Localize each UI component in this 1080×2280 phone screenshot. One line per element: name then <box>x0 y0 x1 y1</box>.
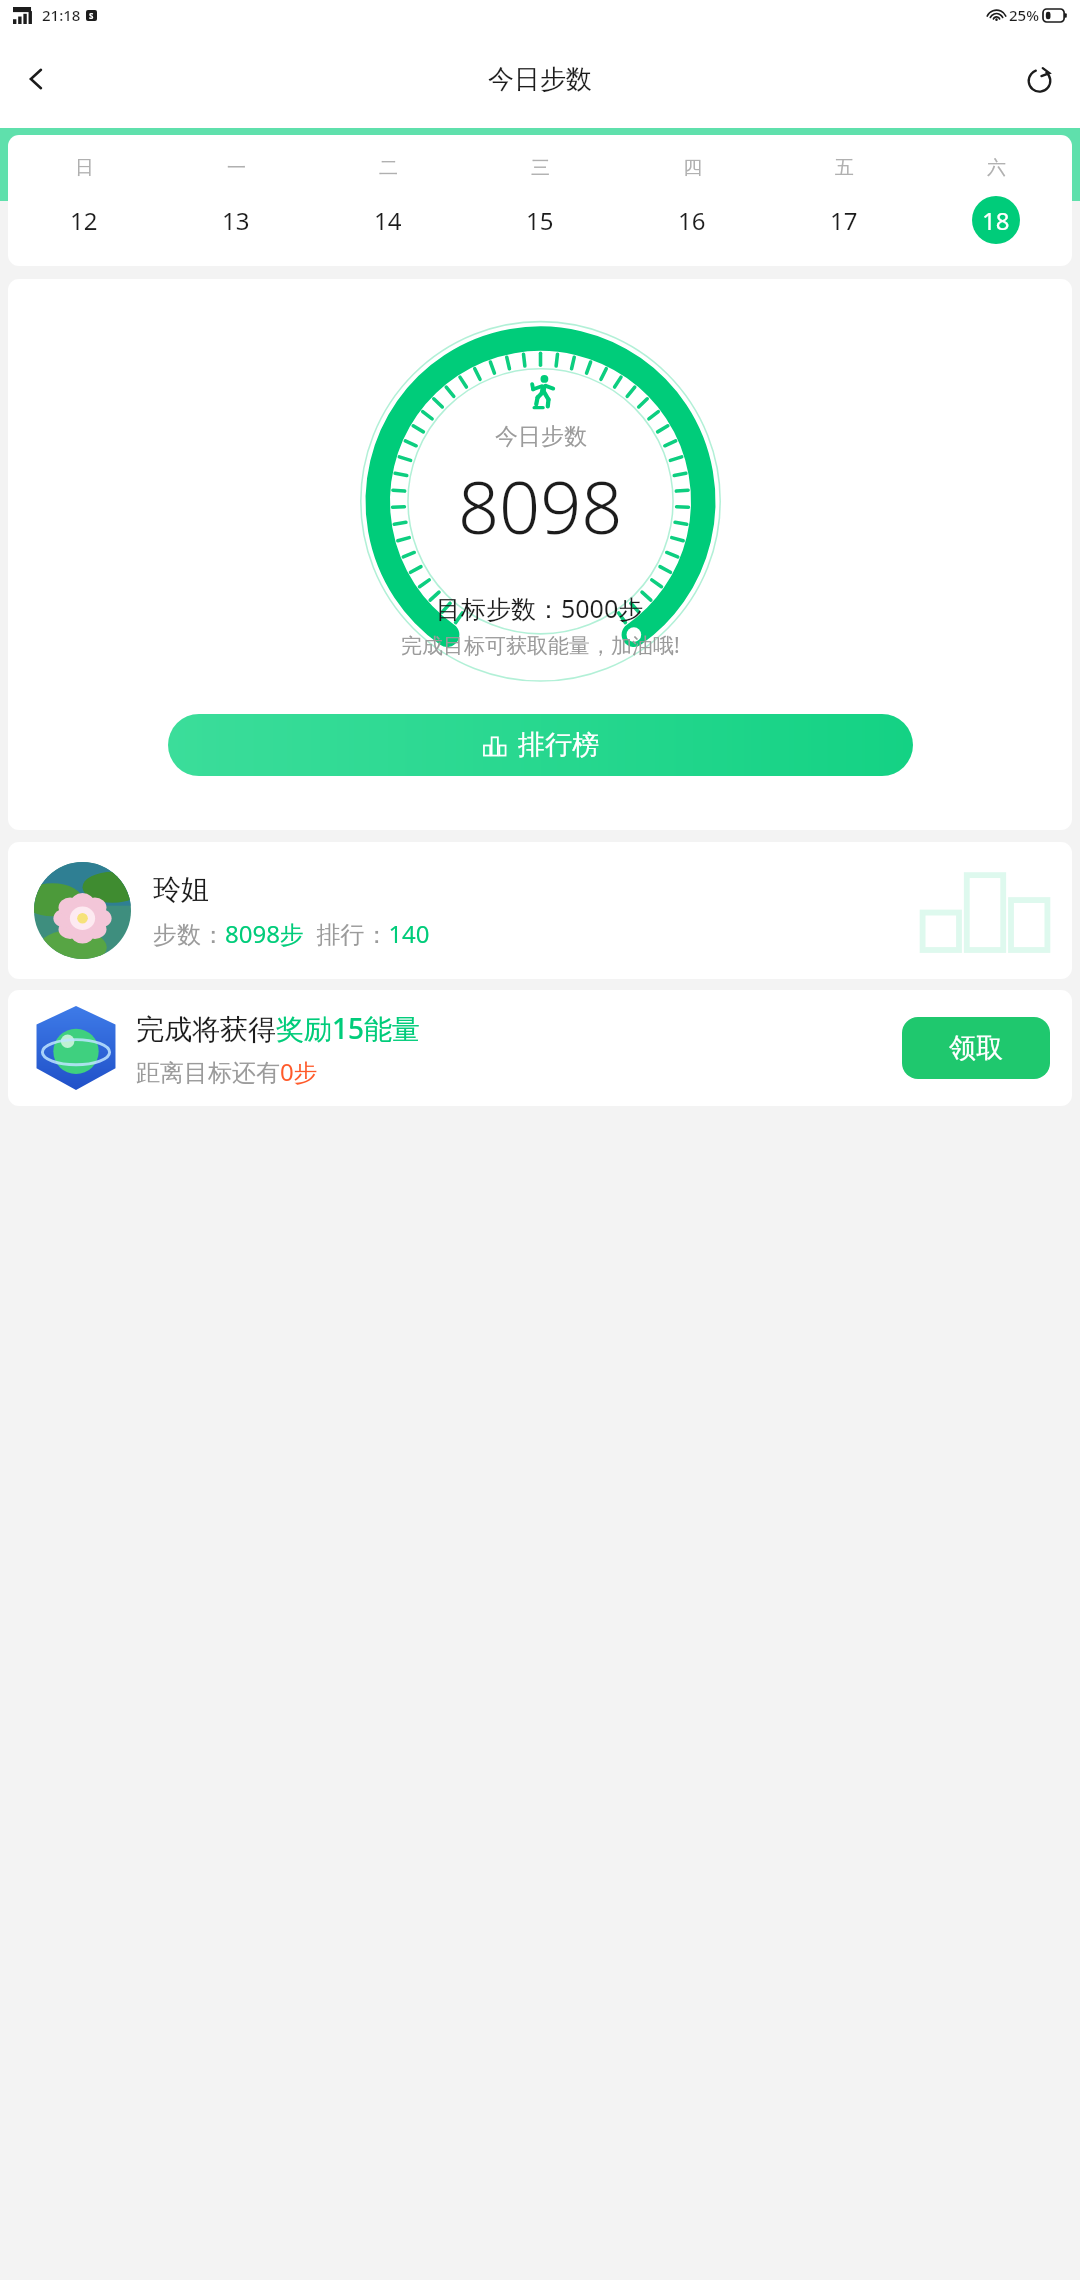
staticText: 17 <box>830 204 858 237</box>
staticText: 完成目标可获取能量，加油哦! <box>401 631 680 660</box>
staticText: 目标步数：5000步 <box>436 591 644 625</box>
staticText: S <box>89 10 94 21</box>
staticText: 一 <box>227 156 246 180</box>
staticText: 六 <box>987 156 1006 180</box>
staticText: 今日步数 <box>495 422 587 451</box>
button[interactable]: 15 <box>516 196 564 244</box>
button[interactable]: Share <box>1012 52 1066 106</box>
staticText: 13 <box>222 204 250 237</box>
staticText: 二 <box>379 156 398 180</box>
staticText: 四 <box>683 156 702 180</box>
button[interactable]: 领取 <box>902 1017 1050 1079</box>
button[interactable]: 17 <box>820 196 868 244</box>
button[interactable]: 玲姐 <box>8 842 1072 979</box>
staticText: 步数：8098步 排行：140 <box>153 917 430 950</box>
staticText: 25% <box>1009 5 1039 25</box>
staticText: 15 <box>526 204 554 237</box>
staticText: 完成将获得奖励15能量 <box>136 1009 421 1047</box>
staticText: 18 <box>982 204 1010 237</box>
staticText: 玲姐 <box>153 872 209 907</box>
button[interactable]: 日 <box>8 135 1072 266</box>
staticText: 8098 <box>458 457 623 555</box>
staticText: 14 <box>374 204 402 237</box>
staticText: 日 <box>75 156 94 180</box>
button[interactable]: 16 <box>668 196 716 244</box>
staticText: 16 <box>678 204 706 237</box>
button[interactable]: Back <box>10 52 64 106</box>
button[interactable]: 排行榜 <box>168 714 913 776</box>
button[interactable]: 18 <box>972 196 1020 244</box>
staticText: 五 <box>835 156 854 180</box>
staticText: 距离目标还有0步 <box>136 1055 318 1088</box>
staticText: 今日步数 <box>488 63 592 96</box>
staticText: 12 <box>70 204 98 237</box>
button[interactable]: 14 <box>364 196 412 244</box>
button[interactable]: 12 <box>60 196 108 244</box>
staticText: 21:18 <box>42 5 81 25</box>
staticText: 三 <box>531 156 550 180</box>
staticText: 领取 <box>949 1031 1003 1065</box>
button[interactable]: 13 <box>212 196 260 244</box>
staticText: 排行榜 <box>518 728 599 762</box>
